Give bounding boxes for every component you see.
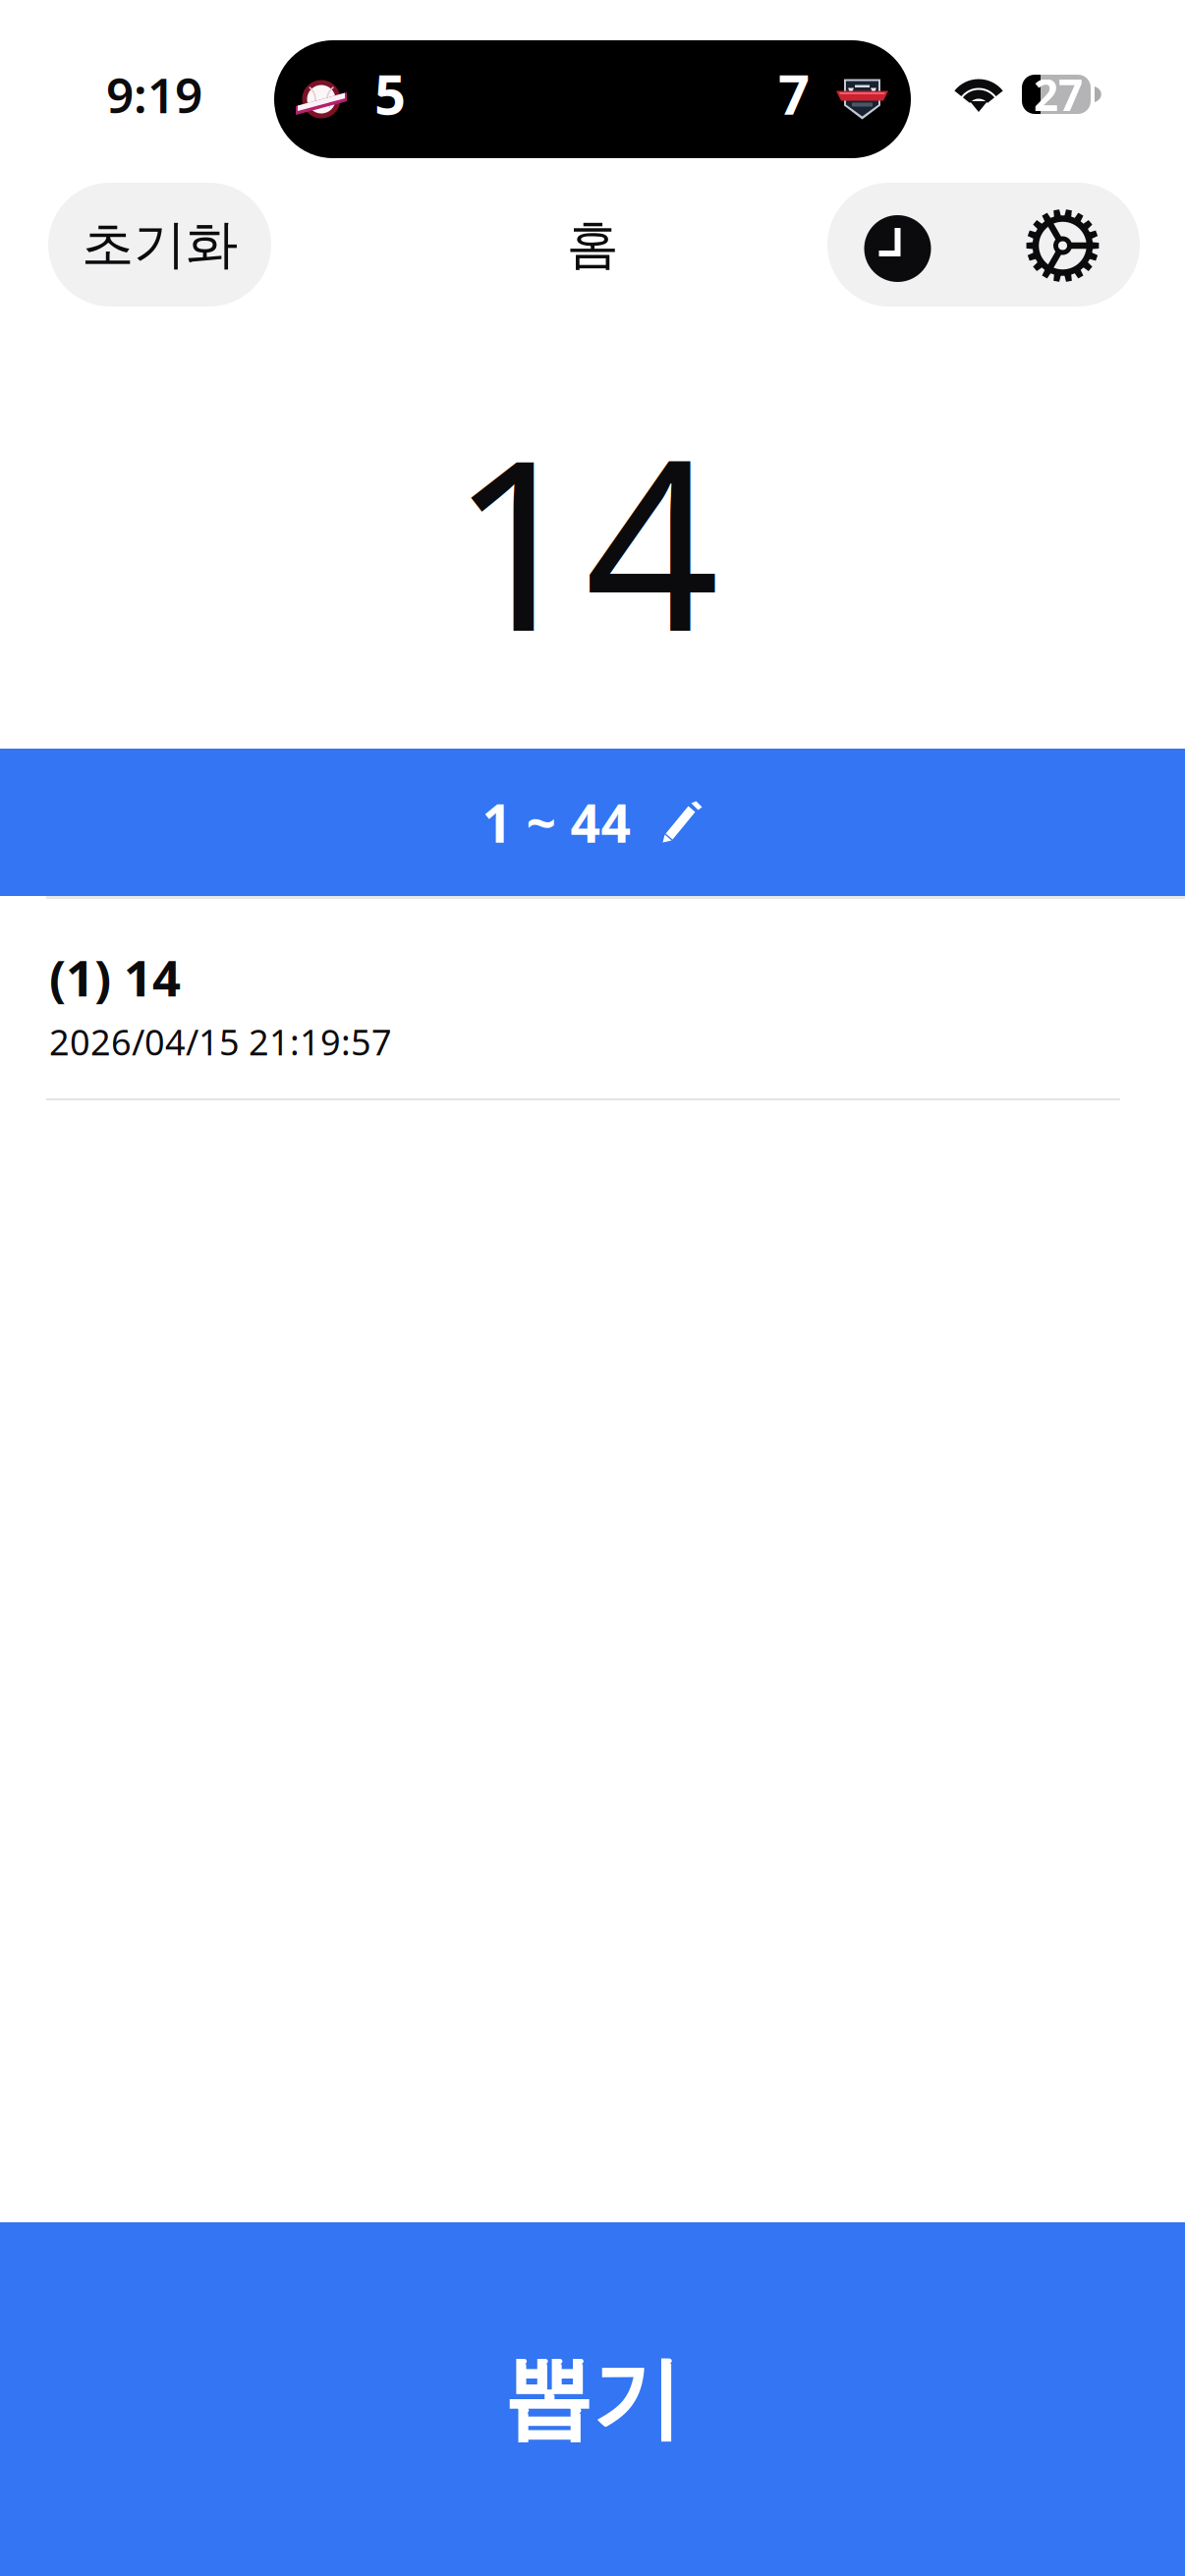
staticText: 5 — [374, 57, 406, 130]
button[interactable]: 뽑기 — [0, 2222, 1185, 2576]
staticText: 홈 — [566, 212, 619, 277]
button[interactable]: 초기화 — [48, 183, 271, 307]
button[interactable]: (1) 14 — [0, 899, 1185, 1100]
staticText: 9:19 — [106, 62, 202, 126]
button[interactable]: History — [827, 183, 984, 307]
staticText: 1 ~ 44 — [482, 788, 631, 857]
staticText: 2026/04/15 21:19:57 — [49, 1018, 392, 1065]
staticText: 7 — [778, 57, 810, 130]
button[interactable]: 1 ~ 44 — [0, 749, 1185, 896]
staticText: 초기화 — [82, 212, 238, 277]
button[interactable]: Settings — [984, 183, 1140, 307]
staticText: (1) 14 — [49, 944, 181, 1010]
staticText: 27 — [1034, 66, 1083, 123]
staticText: 뽑기 — [503, 2344, 682, 2454]
staticText: 14 — [450, 383, 719, 696]
